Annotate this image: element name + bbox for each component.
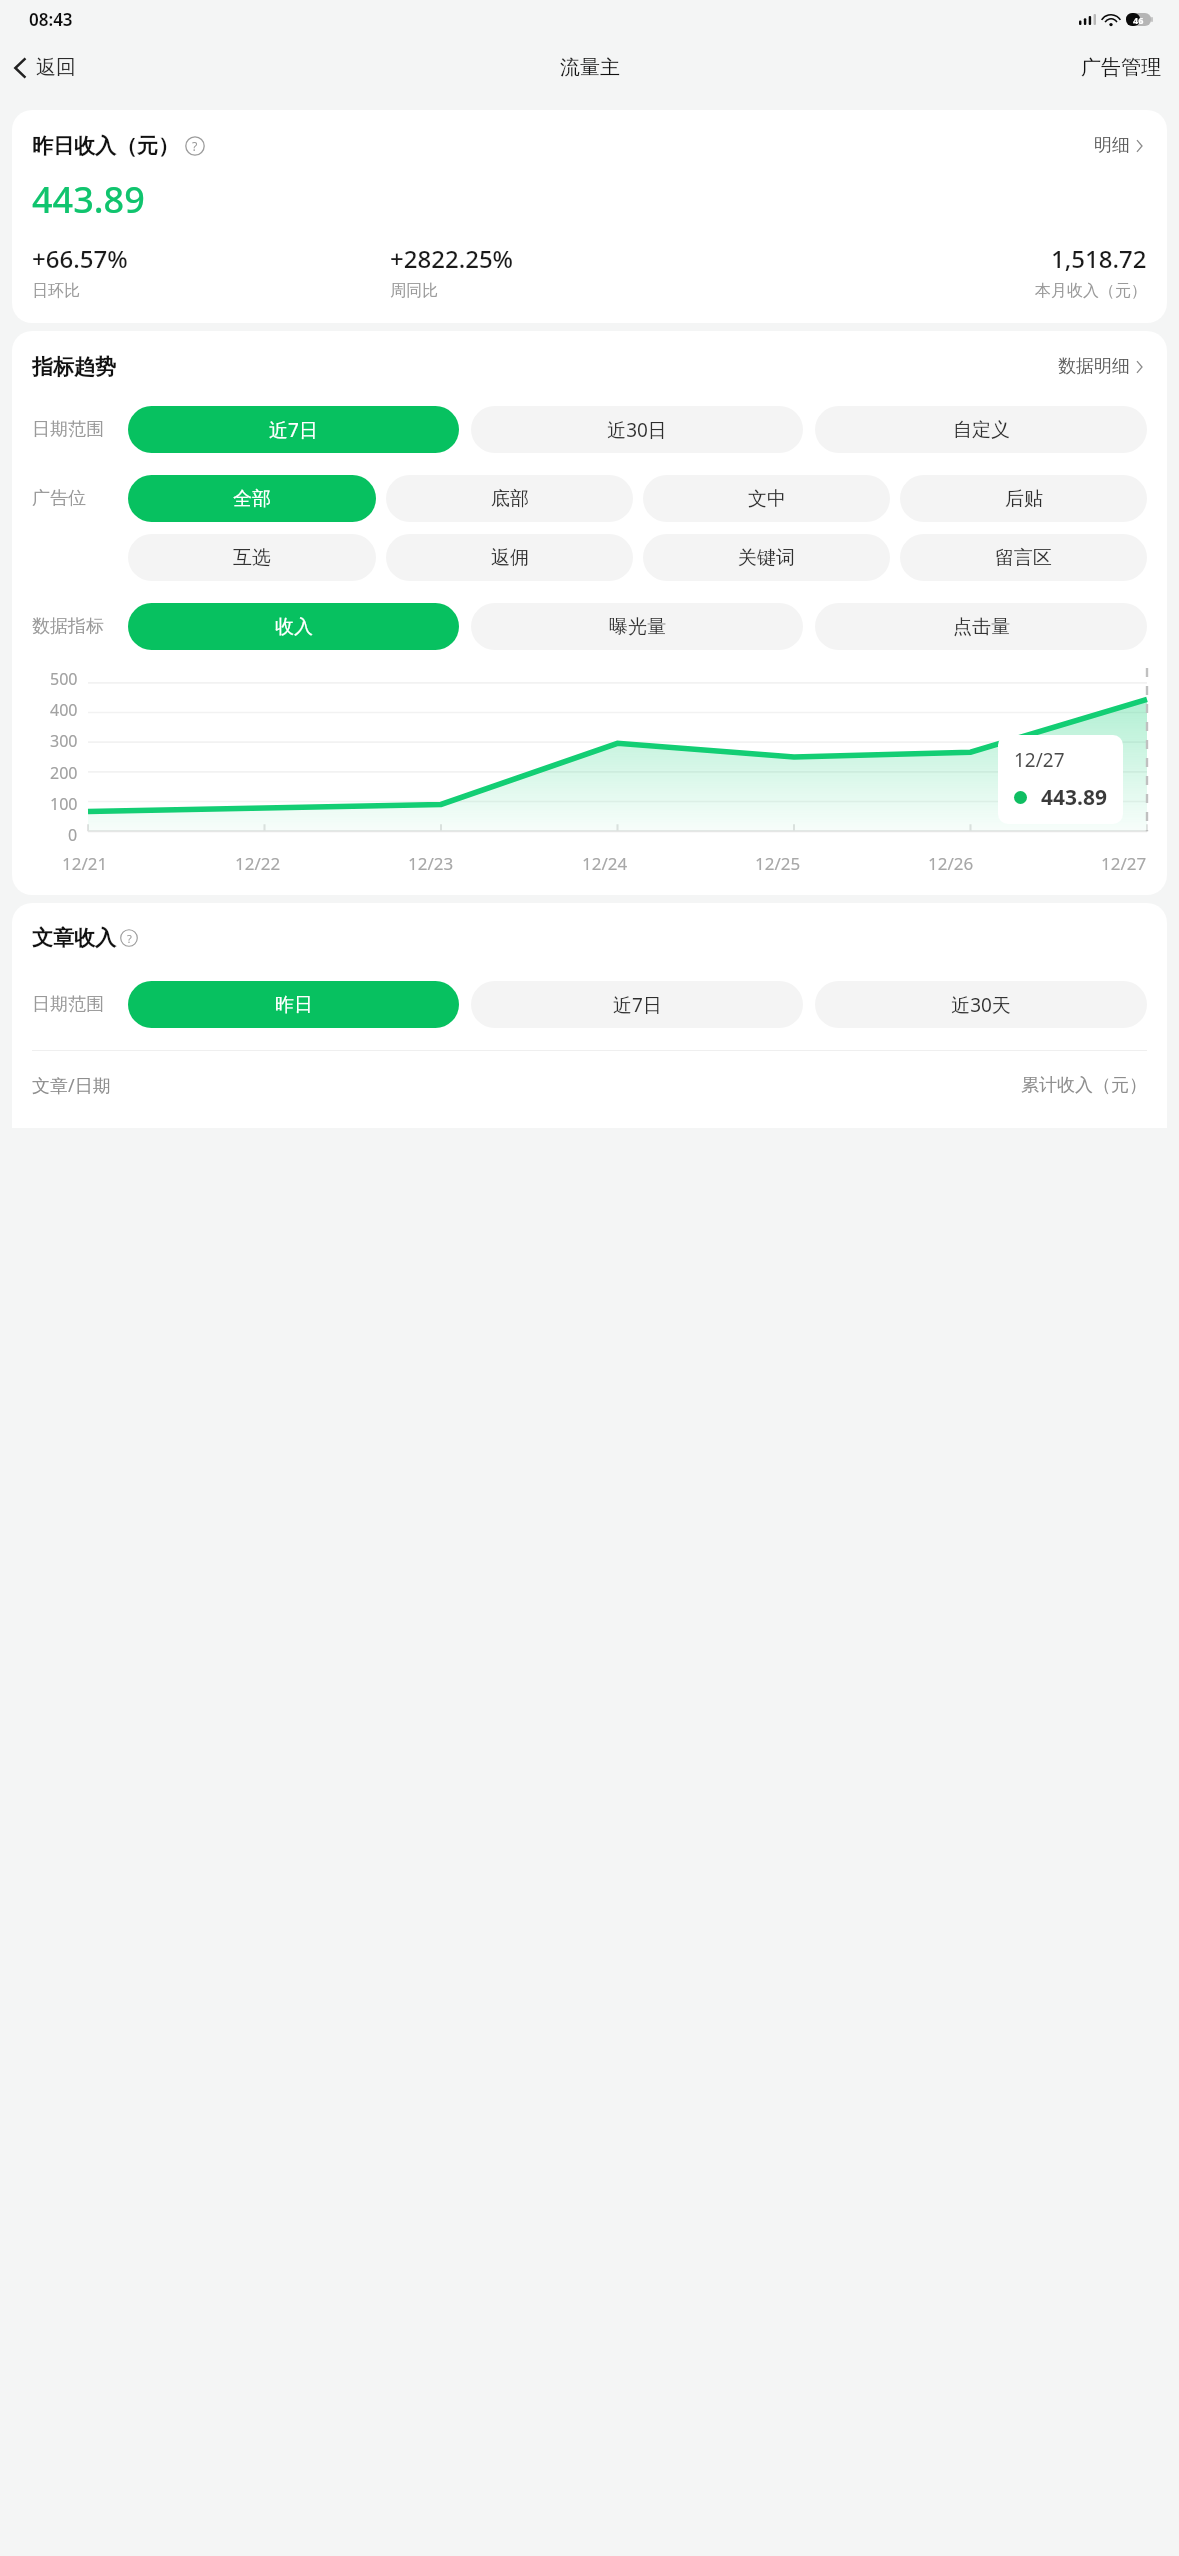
staticText: 点击量 xyxy=(953,615,1010,639)
button[interactable]: 自定义 xyxy=(815,406,1147,453)
button[interactable]: 昨日 xyxy=(128,981,459,1028)
button[interactable]: 收入 xyxy=(128,603,459,650)
staticText: +66.57% xyxy=(32,242,128,275)
staticText: 文中 xyxy=(748,487,786,511)
button[interactable]: 关键词 xyxy=(643,534,890,581)
button[interactable]: 留言区 xyxy=(900,534,1147,581)
staticText: 近30天 xyxy=(951,992,1011,1018)
staticText: 昨日收入（元） xyxy=(32,133,179,159)
staticText: 近7日 xyxy=(269,417,318,443)
staticText: 数据明细 xyxy=(1058,355,1130,378)
button[interactable]: 后贴 xyxy=(900,475,1147,522)
staticText: 广告位 xyxy=(32,487,120,510)
button[interactable]: 说明 xyxy=(185,136,205,156)
button[interactable]: 广告管理 xyxy=(1063,47,1179,88)
button[interactable]: 返佣 xyxy=(386,534,633,581)
staticText: 收入 xyxy=(275,615,313,639)
staticText: 曝光量 xyxy=(609,615,666,639)
staticText: 返佣 xyxy=(491,546,529,570)
staticText: 12/26 xyxy=(928,852,974,875)
staticText: ? xyxy=(127,931,132,946)
staticText: 流量主 xyxy=(560,55,620,80)
button[interactable]: 点击量 xyxy=(815,603,1147,650)
staticText: 12/22 xyxy=(235,852,281,875)
staticText: 日期范围 xyxy=(32,418,120,441)
staticText: 400 xyxy=(50,699,78,721)
button[interactable]: 近30日 xyxy=(471,406,803,453)
button[interactable]: 近7日 xyxy=(471,981,803,1028)
staticText: 12/27 xyxy=(1101,852,1147,875)
staticText: 周同比 xyxy=(390,281,438,301)
staticText: 文章收入 xyxy=(32,925,116,951)
button[interactable]: 近30天 xyxy=(815,981,1147,1028)
staticText: 本月收入（元） xyxy=(1035,281,1147,301)
staticText: 昨日 xyxy=(275,993,313,1017)
button[interactable]: 全部 xyxy=(128,475,376,522)
staticText: 1,518.72 xyxy=(1051,242,1147,275)
staticText: 200 xyxy=(50,762,78,784)
staticText: 近30日 xyxy=(607,417,667,443)
button[interactable]: 曝光量 xyxy=(471,603,803,650)
staticText: 300 xyxy=(50,730,78,752)
staticText: ? xyxy=(192,138,198,155)
staticText: 指标趋势 xyxy=(32,354,116,380)
staticText: 后贴 xyxy=(1005,487,1043,511)
button[interactable]: 互选 xyxy=(128,534,376,581)
staticText: 明细 xyxy=(1094,134,1130,157)
staticText: 08:43 xyxy=(29,8,73,31)
staticText: 500 xyxy=(50,668,78,690)
staticText: 12/27 xyxy=(1014,747,1065,773)
staticText: 0 xyxy=(68,824,78,846)
staticText: 底部 xyxy=(491,487,529,511)
button[interactable]: 返回 xyxy=(0,49,88,86)
staticText: 留言区 xyxy=(995,546,1052,570)
staticText: 数据指标 xyxy=(32,615,120,638)
staticText: 443.89 xyxy=(1041,783,1107,812)
staticText: +2822.25% xyxy=(390,242,514,275)
staticText: 46 xyxy=(1133,14,1144,26)
button[interactable]: 明细 xyxy=(1090,130,1147,161)
button[interactable]: 数据明细 xyxy=(1054,351,1147,382)
staticText: 近7日 xyxy=(613,992,662,1018)
staticText: 12/23 xyxy=(408,852,454,875)
staticText: 12/24 xyxy=(582,852,628,875)
staticText: 累计收入（元） xyxy=(1021,1074,1147,1097)
staticText: 12/21 xyxy=(62,852,108,875)
button[interactable]: 文中 xyxy=(643,475,890,522)
staticText: 日期范围 xyxy=(32,993,120,1016)
button[interactable]: 近7日 xyxy=(128,406,459,453)
button[interactable]: 底部 xyxy=(386,475,633,522)
staticText: 100 xyxy=(50,793,78,815)
staticText: 文章/日期 xyxy=(32,1073,111,1098)
staticText: 443.89 xyxy=(32,175,145,224)
staticText: 日环比 xyxy=(32,281,80,301)
staticText: 自定义 xyxy=(953,418,1010,442)
button[interactable]: 说明 xyxy=(120,929,138,947)
staticText: 12/25 xyxy=(755,852,801,875)
staticText: 返回 xyxy=(36,55,76,80)
staticText: 关键词 xyxy=(738,546,795,570)
staticText: 全部 xyxy=(233,487,271,511)
staticText: 互选 xyxy=(233,546,271,570)
